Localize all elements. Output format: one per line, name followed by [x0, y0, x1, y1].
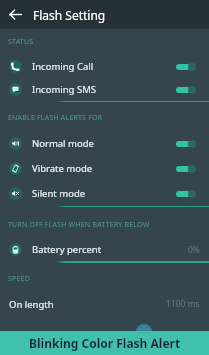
staticText: Battery percent [32, 243, 102, 256]
staticText: TURN OFF FLASH WHEN BATTERY BELOW [8, 220, 150, 230]
button[interactable]: Silent mode [0, 181, 209, 206]
staticText: Incoming Call [32, 60, 94, 73]
button[interactable]: Toggle [176, 83, 196, 97]
button[interactable]: Incoming Call [0, 55, 209, 78]
staticText: Normal mode [32, 137, 94, 150]
staticText: STATUS [8, 37, 34, 47]
button[interactable]: Toggle [176, 187, 196, 201]
button[interactable]: Toggle [176, 162, 196, 176]
button[interactable]: Battery percent [0, 238, 209, 261]
button[interactable]: On length [0, 291, 209, 317]
button[interactable]: Toggle [176, 137, 196, 151]
staticText: Incoming SMS [32, 83, 96, 96]
button[interactable]: Incoming SMS [0, 78, 209, 101]
staticText: Silent mode [32, 187, 86, 200]
button[interactable]: Toggle [176, 60, 196, 74]
staticText: 1100 ms [166, 298, 200, 310]
staticText: Blinking Color Flash Alert [29, 335, 181, 351]
button[interactable]: Vibrate mode [0, 156, 209, 181]
button[interactable]: Back [0, 0, 30, 29]
button[interactable]: Normal mode [0, 131, 209, 156]
staticText: Flash Setting [33, 7, 106, 23]
staticText: ENABLE FLASH ALERTS FOR [8, 113, 103, 123]
staticText: 0% [188, 244, 200, 256]
staticText: SPEED [8, 274, 30, 284]
staticText: Vibrate mode [32, 162, 93, 175]
button[interactable]: Blinking Color Flash Alert [0, 331, 209, 355]
staticText: On length [9, 298, 54, 311]
